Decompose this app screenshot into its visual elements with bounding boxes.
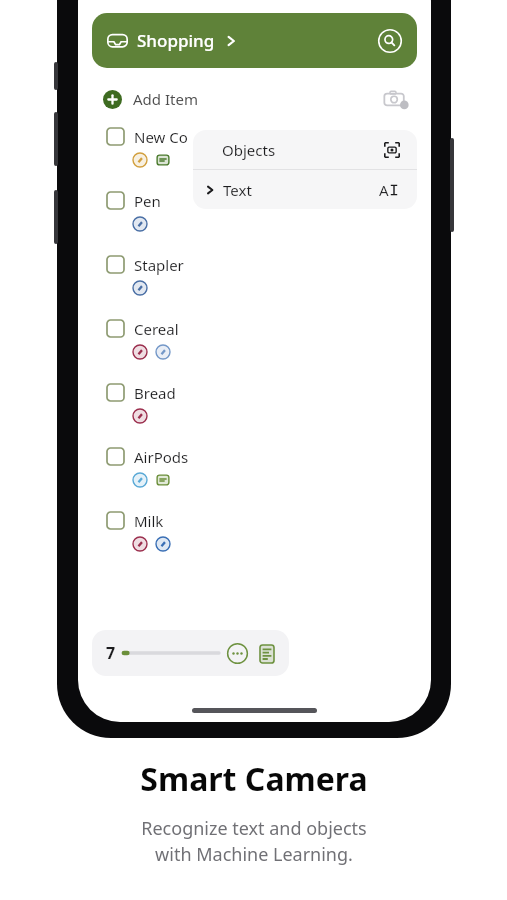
staticText: Smart Camera: [140, 757, 368, 801]
button[interactable]: Text: [193, 170, 417, 209]
button[interactable]: More options: [226, 642, 249, 665]
button[interactable]: Search: [377, 28, 403, 54]
staticText: Objects: [222, 140, 276, 160]
button[interactable]: Pen: [78, 185, 431, 249]
staticText: Pen: [134, 191, 161, 211]
button[interactable]: Shopping: [92, 13, 417, 68]
button[interactable]: Bread: [78, 377, 431, 441]
button[interactable]: Objects: [193, 130, 417, 169]
staticText: Shopping: [137, 29, 215, 52]
staticText: Add Item: [133, 89, 198, 109]
staticText: New Co: [134, 127, 188, 147]
button[interactable]: Add Item: [78, 82, 431, 116]
staticText: Text: [223, 180, 252, 200]
button[interactable]: Notes: [255, 642, 278, 665]
staticText: Milk: [134, 511, 164, 531]
button[interactable]: New Co: [78, 121, 431, 185]
button[interactable]: AirPods: [78, 441, 431, 505]
button[interactable]: Stapler: [78, 249, 431, 313]
staticText: Bread: [134, 383, 176, 403]
button[interactable]: Scan with camera: [381, 84, 411, 114]
button[interactable]: Milk: [78, 505, 431, 569]
staticText: Recognize text and objects with Machine …: [141, 816, 367, 867]
staticText: Stapler: [134, 255, 184, 275]
staticText: A: [379, 180, 389, 200]
staticText: 7: [106, 642, 116, 664]
staticText: Cereal: [134, 319, 179, 339]
staticText: AirPods: [134, 447, 189, 467]
button[interactable]: Cereal: [78, 313, 431, 377]
